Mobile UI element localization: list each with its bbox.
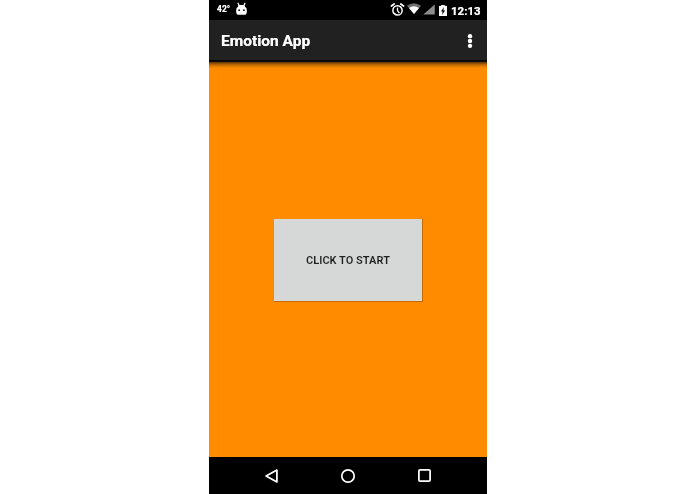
button[interactable]: CLICK TO START — [274, 219, 422, 301]
button[interactable]: Home — [322, 457, 374, 494]
staticText: CLICK TO START — [306, 254, 390, 267]
staticText: 42° — [217, 4, 231, 14]
staticText: 12:13 — [451, 4, 481, 17]
staticText: Emotion App — [221, 32, 311, 50]
button[interactable]: Recents — [398, 457, 450, 494]
button[interactable]: Back — [245, 457, 297, 494]
button[interactable]: More options — [451, 20, 489, 62]
